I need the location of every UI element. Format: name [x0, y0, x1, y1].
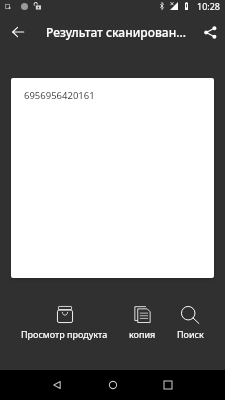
button[interactable]: копия	[129, 306, 156, 340]
staticText: копия	[129, 328, 156, 340]
button[interactable]: Back	[6, 14, 30, 50]
button[interactable]: Recent apps	[153, 370, 183, 400]
staticText: 10:28	[197, 0, 221, 12]
button[interactable]: Share	[198, 14, 222, 50]
button[interactable]: Просмотр продукта	[21, 306, 108, 340]
staticText: 6956956420161	[24, 89, 95, 102]
button[interactable]: Поиск	[177, 306, 204, 340]
button[interactable]: Home	[98, 370, 128, 400]
button[interactable]: 6956956420161	[11, 78, 214, 278]
staticText: Результат сканирован…	[46, 24, 186, 40]
staticText: Просмотр продукта	[21, 328, 108, 340]
button[interactable]: Back	[42, 370, 72, 400]
staticText: Поиск	[177, 328, 204, 340]
